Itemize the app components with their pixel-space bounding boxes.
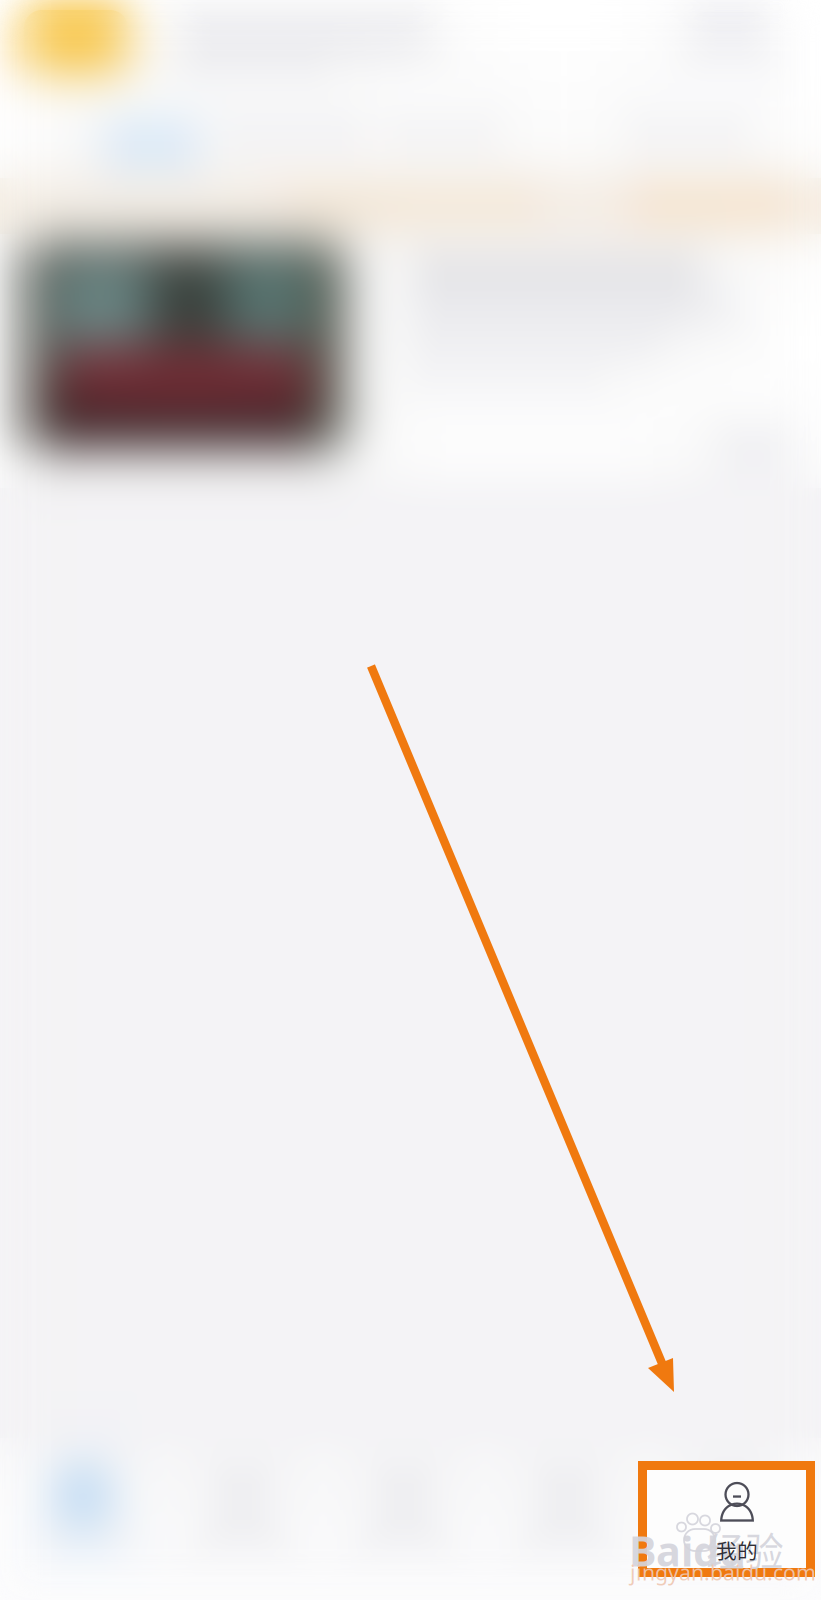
staticText: jingyan.baidu.com <box>630 1558 816 1586</box>
staticText: 经验 <box>706 1521 784 1577</box>
staticText: 我的 <box>716 1535 758 1565</box>
staticText: Baidu <box>629 1523 746 1578</box>
button[interactable]: 我的 <box>687 1483 787 1565</box>
